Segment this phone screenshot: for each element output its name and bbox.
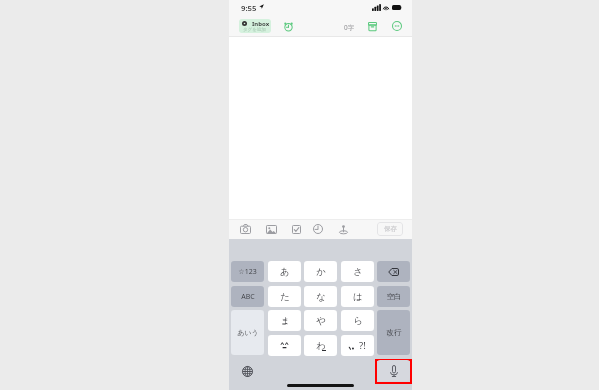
button[interactable]: 改行 xyxy=(377,310,410,355)
button[interactable]: Camera xyxy=(238,222,252,236)
staticText: あ xyxy=(280,266,290,278)
button[interactable]: ま xyxy=(268,310,301,331)
button[interactable]: わ xyxy=(304,335,337,356)
button[interactable]: あいう xyxy=(231,310,264,355)
staticText: わ xyxy=(316,340,326,352)
button[interactable]: Location xyxy=(336,222,350,236)
button[interactable]: Checklist xyxy=(289,222,303,236)
staticText: ABC xyxy=(241,292,255,302)
staticText: あいう xyxy=(237,328,259,337)
button[interactable]: Inbox xyxy=(239,19,271,33)
button[interactable]: Reminder xyxy=(281,19,295,33)
button[interactable]: か xyxy=(304,261,337,282)
staticText: や xyxy=(316,315,326,327)
button[interactable] xyxy=(268,335,301,356)
staticText: か xyxy=(316,266,326,278)
button[interactable]: な xyxy=(304,286,337,307)
button[interactable]: Archive xyxy=(365,19,379,33)
staticText: ?! xyxy=(359,339,366,352)
button[interactable]: ABC xyxy=(231,286,264,307)
staticText: ま xyxy=(280,315,290,327)
button[interactable]: た xyxy=(268,286,301,307)
button[interactable]: ら xyxy=(341,310,374,331)
button[interactable]: ?! xyxy=(341,335,374,356)
button[interactable]: Dictation xyxy=(377,360,410,381)
button[interactable]: や xyxy=(304,310,337,331)
button[interactable]: さ xyxy=(341,261,374,282)
staticText: ら xyxy=(353,315,363,327)
button[interactable]: Switch keyboard xyxy=(241,365,253,377)
staticText: 保存 xyxy=(384,225,397,233)
staticText: た xyxy=(280,291,290,303)
staticText: な xyxy=(316,291,326,303)
button[interactable]: あ xyxy=(268,261,301,282)
staticText: Inbox xyxy=(252,20,270,28)
button[interactable]: 保存 xyxy=(377,222,403,236)
staticText: さ xyxy=(353,266,363,278)
button[interactable]: は xyxy=(341,286,374,307)
staticText: は xyxy=(353,291,363,303)
button[interactable]: More options xyxy=(390,19,404,33)
staticText: 改行 xyxy=(386,328,402,338)
staticText: ☆123 xyxy=(238,267,257,277)
button[interactable] xyxy=(377,261,410,282)
staticText: 0字 xyxy=(344,23,355,32)
staticText: タグを追加 xyxy=(243,27,266,33)
button[interactable]: ☆123 xyxy=(231,261,264,282)
button[interactable]: 空白 xyxy=(377,286,410,307)
staticText: 9:55 xyxy=(241,3,257,14)
staticText: 空白 xyxy=(386,292,402,302)
button[interactable]: Timer xyxy=(311,222,325,236)
button[interactable]: Photo xyxy=(264,222,278,236)
